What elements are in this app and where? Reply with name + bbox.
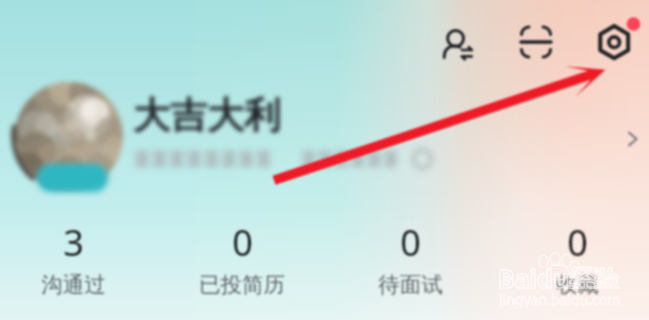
staticText: 沟通过 bbox=[41, 271, 106, 298]
button[interactable]: 0 bbox=[158, 218, 326, 304]
staticText: jingyan.baidu.com bbox=[499, 290, 621, 308]
staticText: 0 bbox=[232, 218, 253, 267]
staticText: 0 bbox=[567, 218, 588, 267]
staticText: 已投简历 bbox=[199, 271, 285, 298]
staticText: 待面试 bbox=[378, 271, 443, 298]
button[interactable]: 3 bbox=[0, 218, 157, 304]
button[interactable]: Settings bbox=[586, 8, 642, 64]
button[interactable]: 0 bbox=[326, 218, 494, 304]
staticText: Baidu经验 bbox=[498, 261, 620, 289]
button[interactable]: 0 bbox=[493, 218, 649, 304]
staticText: 3 bbox=[63, 218, 84, 267]
button[interactable]: Switch identity bbox=[437, 19, 485, 67]
staticText: 大吉大利 bbox=[133, 92, 281, 139]
staticText: 0 bbox=[400, 218, 421, 267]
button[interactable]: Verified badge bbox=[26, 154, 118, 202]
staticText: 收藏 bbox=[556, 271, 599, 298]
button[interactable]: Open profile bbox=[616, 122, 649, 156]
button[interactable]: Scan bbox=[512, 18, 560, 66]
